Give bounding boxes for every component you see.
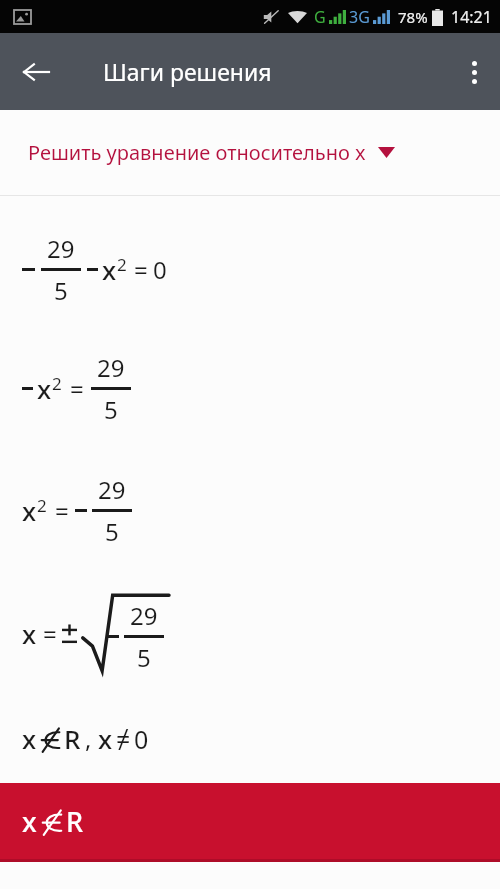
- staticText: =: [55, 494, 69, 527]
- button[interactable]: Back: [8, 44, 64, 100]
- staticText: x: [98, 721, 113, 756]
- staticText: x: [22, 721, 37, 756]
- staticText: 2: [37, 494, 47, 517]
- staticText: 2: [117, 253, 127, 276]
- staticText: x: [102, 252, 117, 287]
- staticText: Решить уравнение относительно x: [28, 139, 366, 166]
- staticText: 14:21: [451, 6, 492, 28]
- staticText: =: [134, 253, 148, 286]
- button[interactable]: More options: [448, 46, 500, 98]
- staticText: =: [43, 617, 57, 650]
- button[interactable]: x: [0, 783, 500, 859]
- staticText: 2: [52, 372, 62, 395]
- staticText: 0: [134, 722, 149, 756]
- staticText: 5: [104, 393, 118, 426]
- staticText: x: [37, 371, 52, 406]
- staticText: 78%: [398, 7, 428, 27]
- staticText: R: [64, 721, 81, 756]
- staticText: x: [22, 493, 37, 528]
- staticText: =: [70, 372, 84, 405]
- staticText: 29: [97, 351, 125, 384]
- staticText: 3G: [349, 6, 370, 28]
- staticText: 0: [153, 253, 167, 286]
- staticText: 29: [47, 232, 75, 265]
- staticText: Шаги решения: [103, 56, 272, 87]
- staticText: 5: [137, 641, 151, 674]
- staticText: ,: [85, 722, 92, 755]
- staticText: R: [66, 803, 84, 840]
- staticText: 5: [54, 274, 68, 307]
- staticText: x: [22, 803, 37, 840]
- staticText: x: [22, 616, 37, 651]
- staticText: G: [314, 6, 326, 28]
- staticText: ≠: [116, 722, 131, 756]
- staticText: 29: [130, 599, 158, 632]
- staticText: 5: [105, 515, 119, 548]
- button[interactable]: Решить уравнение относительно x: [0, 110, 500, 195]
- staticText: 29: [98, 473, 126, 506]
